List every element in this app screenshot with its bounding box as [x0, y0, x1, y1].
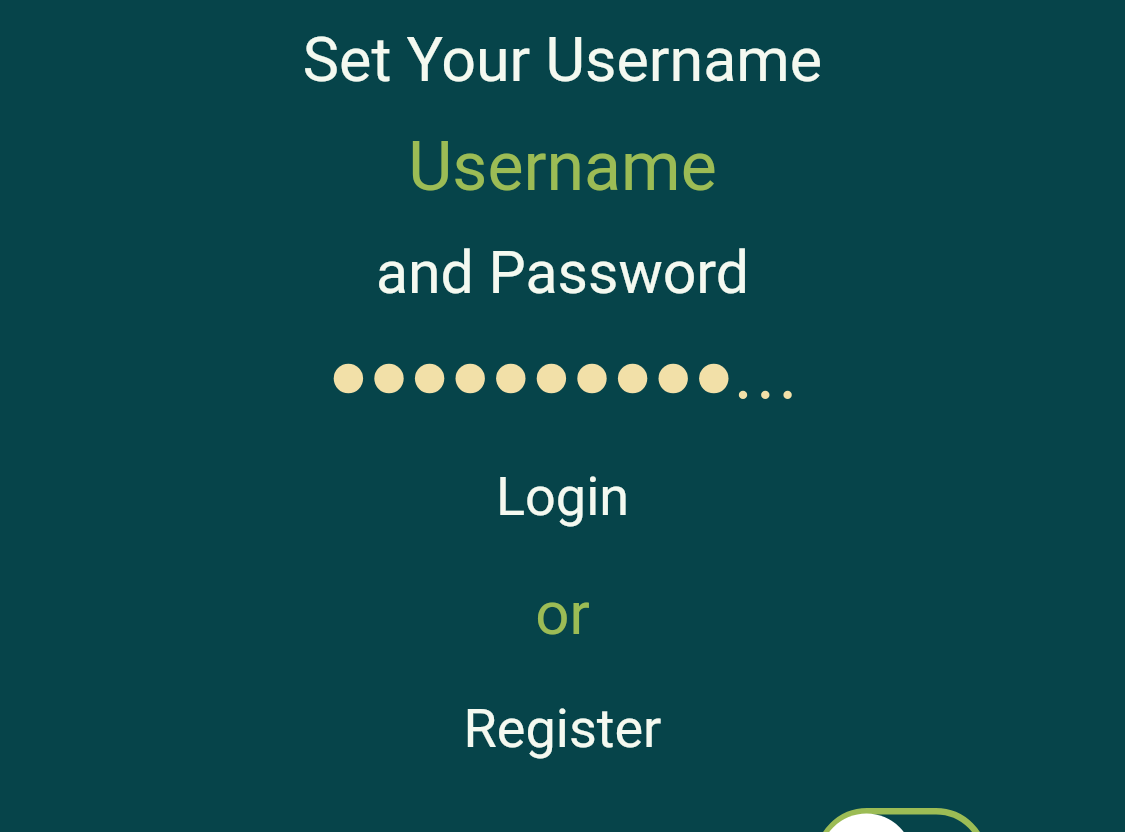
button[interactable]: Register: [0, 697, 1125, 760]
staticText: Set Your Username: [0, 24, 1125, 95]
button[interactable]: and Password: [0, 238, 1125, 307]
staticText: and Password: [0, 238, 1125, 307]
button[interactable]: Password: [320, 348, 810, 410]
button[interactable]: Login: [0, 465, 1125, 528]
staticText: Login: [0, 465, 1125, 528]
button[interactable]: Username: [0, 127, 1125, 207]
staticText: Register: [0, 697, 1125, 760]
button[interactable]: Show password toggle: [815, 808, 988, 832]
staticText: or: [0, 578, 1125, 648]
button[interactable]: or: [0, 578, 1125, 648]
staticText: Username: [0, 127, 1125, 207]
button[interactable]: Set Your Username: [0, 24, 1125, 95]
